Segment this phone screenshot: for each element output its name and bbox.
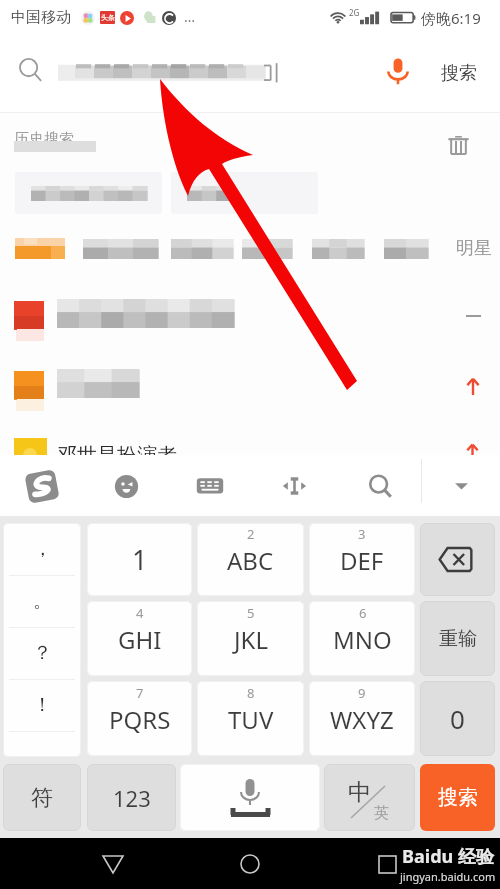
button[interactable] bbox=[171, 172, 318, 214]
button[interactable]: 重输 bbox=[420, 601, 495, 676]
staticText: 7 bbox=[136, 684, 144, 702]
staticText: DEF bbox=[340, 544, 384, 577]
staticText: 符 bbox=[31, 784, 53, 812]
button[interactable]: Move cursor bbox=[273, 455, 315, 517]
staticText: 9 bbox=[358, 684, 366, 702]
button[interactable]: Backspace bbox=[420, 523, 495, 596]
button[interactable]: 邓世昌扮演者 bbox=[0, 438, 500, 455]
staticText: jingyan.baidu.com bbox=[400, 869, 496, 884]
button[interactable]: ？ bbox=[3, 627, 81, 679]
staticText: TUV bbox=[228, 703, 274, 736]
button[interactable]: Home bbox=[226, 840, 274, 888]
button[interactable]: Emoji bbox=[105, 455, 147, 517]
staticText: 搜索 bbox=[441, 62, 477, 85]
button[interactable]: 0 bbox=[420, 681, 495, 756]
staticText: 。 bbox=[33, 589, 52, 613]
button[interactable]: 3 bbox=[309, 523, 415, 596]
button[interactable] bbox=[384, 239, 428, 259]
button[interactable]: 1 bbox=[87, 523, 192, 596]
staticText: JKL bbox=[234, 623, 268, 656]
button[interactable]: 搜索 bbox=[436, 56, 482, 91]
button[interactable]: Recent apps bbox=[363, 840, 411, 888]
staticText: 2 bbox=[247, 525, 255, 543]
button[interactable]: Space bbox=[180, 764, 320, 831]
button[interactable]: 6 bbox=[309, 601, 415, 676]
button[interactable]: 5 bbox=[197, 601, 304, 676]
staticText: … bbox=[184, 7, 196, 26]
button[interactable] bbox=[242, 239, 292, 259]
staticText: Baidu 经验 bbox=[402, 844, 494, 869]
staticText: 邓世昌扮演者 bbox=[57, 443, 177, 455]
button[interactable]: Clear history bbox=[446, 133, 470, 157]
staticText: 3 bbox=[358, 525, 366, 543]
button[interactable]: Voice search bbox=[381, 54, 415, 88]
button[interactable] bbox=[15, 238, 65, 259]
staticText: 重输 bbox=[439, 627, 477, 651]
staticText: ， bbox=[33, 537, 52, 561]
button[interactable]: 8 bbox=[197, 681, 304, 756]
button[interactable] bbox=[312, 239, 364, 259]
button[interactable]: 。 bbox=[3, 575, 81, 627]
staticText: WXYZ bbox=[330, 703, 394, 736]
button[interactable] bbox=[0, 295, 500, 345]
staticText: 6 bbox=[359, 604, 367, 622]
button[interactable]: 4 bbox=[87, 601, 192, 676]
staticText: 0 bbox=[450, 701, 465, 736]
button[interactable]: Sogou keyboard menu bbox=[21, 455, 63, 517]
button[interactable]: 历史搜索 bbox=[14, 130, 96, 149]
other: Search bbox=[19, 58, 43, 82]
staticText: 傍晚6:19 bbox=[421, 8, 481, 28]
button[interactable]: 9 bbox=[309, 681, 415, 756]
button[interactable]: Search bbox=[359, 455, 401, 517]
staticText: 中国移动 bbox=[11, 8, 71, 27]
staticText: ？ bbox=[33, 641, 52, 665]
staticText: MNO bbox=[333, 623, 392, 656]
staticText: 英 bbox=[374, 804, 389, 823]
button[interactable] bbox=[83, 239, 158, 259]
staticText: ！ bbox=[33, 693, 52, 717]
staticText: PQRS bbox=[109, 703, 171, 736]
staticText: 历史搜索 bbox=[14, 130, 74, 149]
staticText: 8 bbox=[247, 684, 255, 702]
staticText: 123 bbox=[113, 783, 151, 813]
button[interactable]: Hide keyboard bbox=[440, 455, 482, 517]
staticText: 2G bbox=[349, 7, 360, 18]
button[interactable]: 7 bbox=[87, 681, 192, 756]
staticText: 搜索 bbox=[438, 785, 478, 810]
button[interactable]: Switch keyboard layout bbox=[189, 455, 231, 517]
staticText: 明星 bbox=[456, 237, 492, 260]
button[interactable]: ！ bbox=[3, 679, 81, 731]
staticText: 1 bbox=[132, 541, 148, 578]
button[interactable] bbox=[171, 239, 233, 259]
button[interactable] bbox=[0, 365, 500, 415]
button[interactable]: ， bbox=[3, 523, 81, 575]
button[interactable]: 搜索 bbox=[420, 764, 495, 831]
button[interactable]: 123 bbox=[87, 764, 176, 831]
staticText: 5 bbox=[247, 604, 255, 622]
staticText: ABC bbox=[227, 544, 274, 577]
staticText: 头条 bbox=[101, 13, 115, 22]
button[interactable]: 符 bbox=[3, 764, 81, 831]
staticText: 中 bbox=[348, 778, 371, 807]
button[interactable]: 中 bbox=[324, 764, 415, 831]
staticText: 4 bbox=[136, 604, 144, 622]
button[interactable] bbox=[15, 172, 162, 214]
button[interactable]: Back bbox=[89, 840, 137, 888]
button[interactable]: 2 bbox=[197, 523, 304, 596]
staticText: GHI bbox=[118, 623, 162, 656]
